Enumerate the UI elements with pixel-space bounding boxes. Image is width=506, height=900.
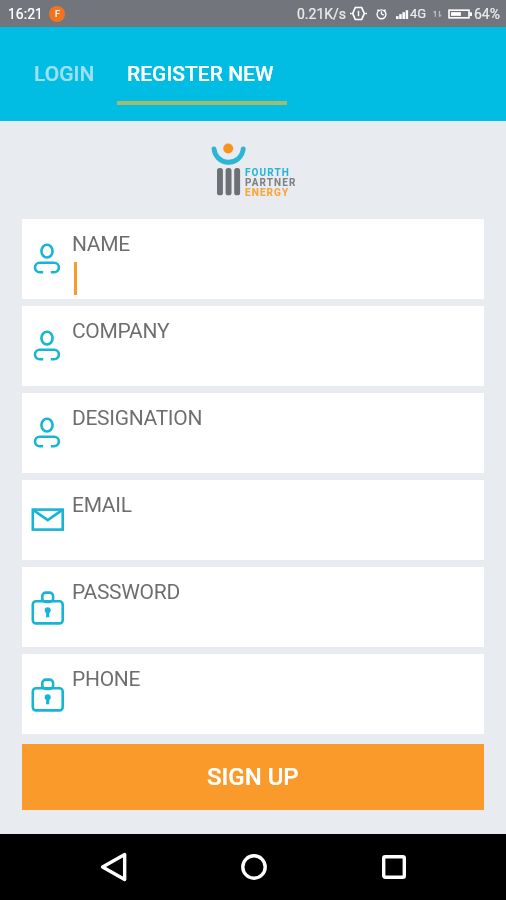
staticText: REGISTER NEW xyxy=(127,62,274,87)
staticText: 16:21 xyxy=(8,6,43,22)
button[interactable]: EMAIL xyxy=(22,480,484,560)
button[interactable]: PHONE xyxy=(22,654,484,734)
staticText: 4G xyxy=(410,6,427,21)
button[interactable]: DESIGNATION xyxy=(22,393,484,473)
staticText: FOURTH xyxy=(245,167,290,179)
button[interactable]: LOGIN xyxy=(18,27,111,121)
button[interactable]: Home xyxy=(223,834,285,900)
staticText: PHONE xyxy=(72,667,141,692)
staticText: 64% xyxy=(474,6,500,22)
staticText: 0.21K/s xyxy=(297,6,347,22)
button[interactable]: PASSWORD xyxy=(22,567,484,647)
button[interactable]: COMPANY xyxy=(22,306,484,386)
staticText: DESIGNATION xyxy=(72,406,203,431)
staticText: ENERGY xyxy=(245,187,290,199)
staticText: LOGIN xyxy=(34,62,95,87)
button[interactable]: Recents xyxy=(363,834,425,900)
staticText: EMAIL xyxy=(72,493,132,518)
button[interactable]: Back xyxy=(83,834,145,900)
staticText: F xyxy=(55,9,60,20)
staticText: PASSWORD xyxy=(72,580,180,605)
staticText: NAME xyxy=(72,232,130,257)
staticText: SIGN UP xyxy=(207,763,299,791)
staticText: COMPANY xyxy=(72,319,170,344)
button[interactable]: REGISTER NEW xyxy=(112,27,289,121)
staticText: PARTNER xyxy=(245,177,297,189)
button[interactable]: NAME xyxy=(22,219,484,299)
button[interactable]: SIGN UP xyxy=(22,744,484,810)
